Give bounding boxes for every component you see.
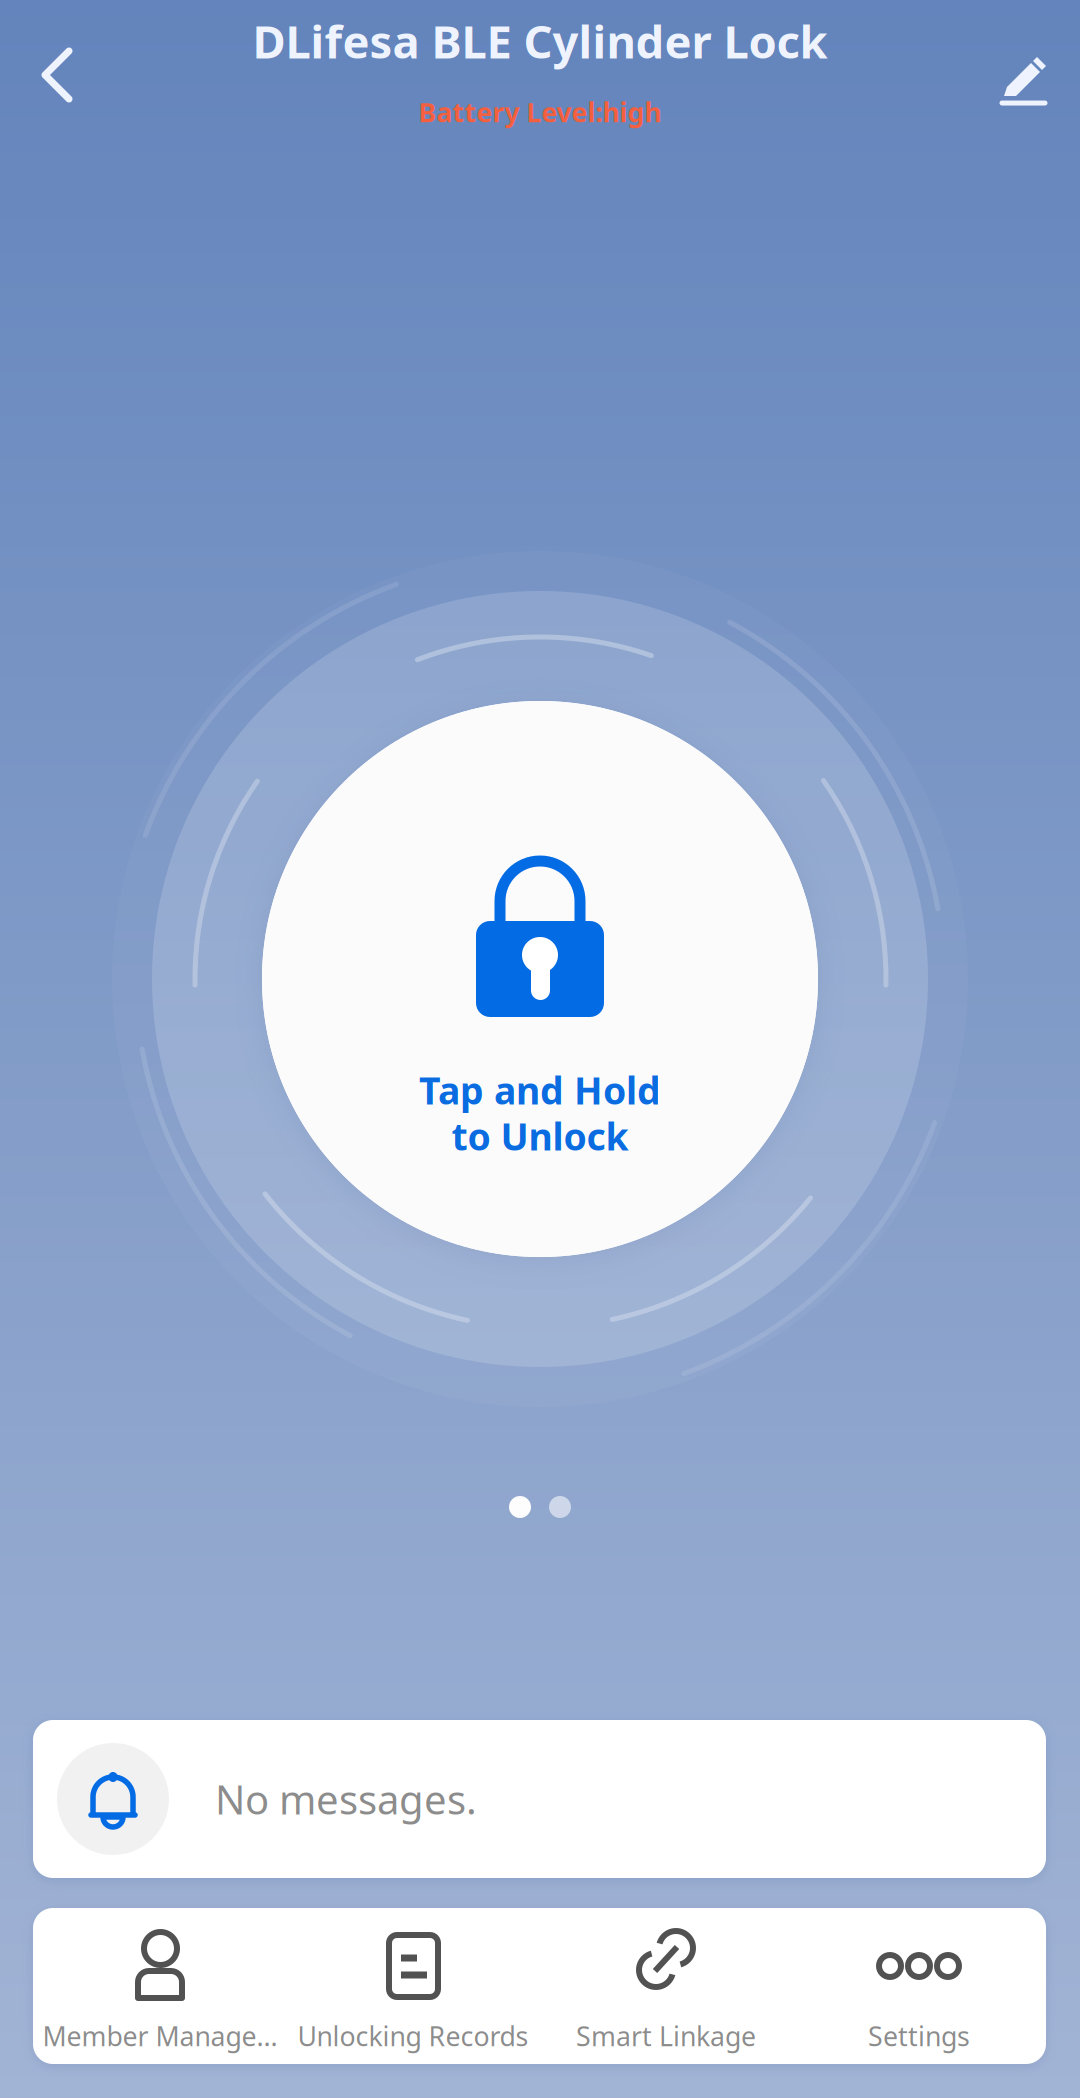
button[interactable]: No messages. xyxy=(33,1720,1046,1878)
staticText: Tap and Hold xyxy=(419,1065,661,1115)
staticText: DLifesa BLE Cylinder Lock xyxy=(252,11,827,71)
staticText: to Unlock xyxy=(451,1111,628,1161)
button[interactable]: Edit xyxy=(979,30,1075,150)
button[interactable]: Member Manage... xyxy=(33,1932,286,2056)
button[interactable]: Unlocking Records xyxy=(286,1932,539,2056)
button[interactable]: Back xyxy=(19,27,115,147)
staticText: No messages. xyxy=(215,1772,477,1825)
staticText: Unlocking Records xyxy=(297,2018,528,2054)
staticText: Settings xyxy=(868,2018,970,2054)
button[interactable]: Settings xyxy=(792,1932,1045,2056)
staticText: Member Manage... xyxy=(42,2018,277,2054)
button[interactable]: Smart Linkage xyxy=(539,1932,792,2056)
staticText: Battery Level:high xyxy=(418,94,661,130)
button[interactable]: Tap and Hold xyxy=(262,701,818,1257)
staticText: Smart Linkage xyxy=(576,2018,756,2054)
